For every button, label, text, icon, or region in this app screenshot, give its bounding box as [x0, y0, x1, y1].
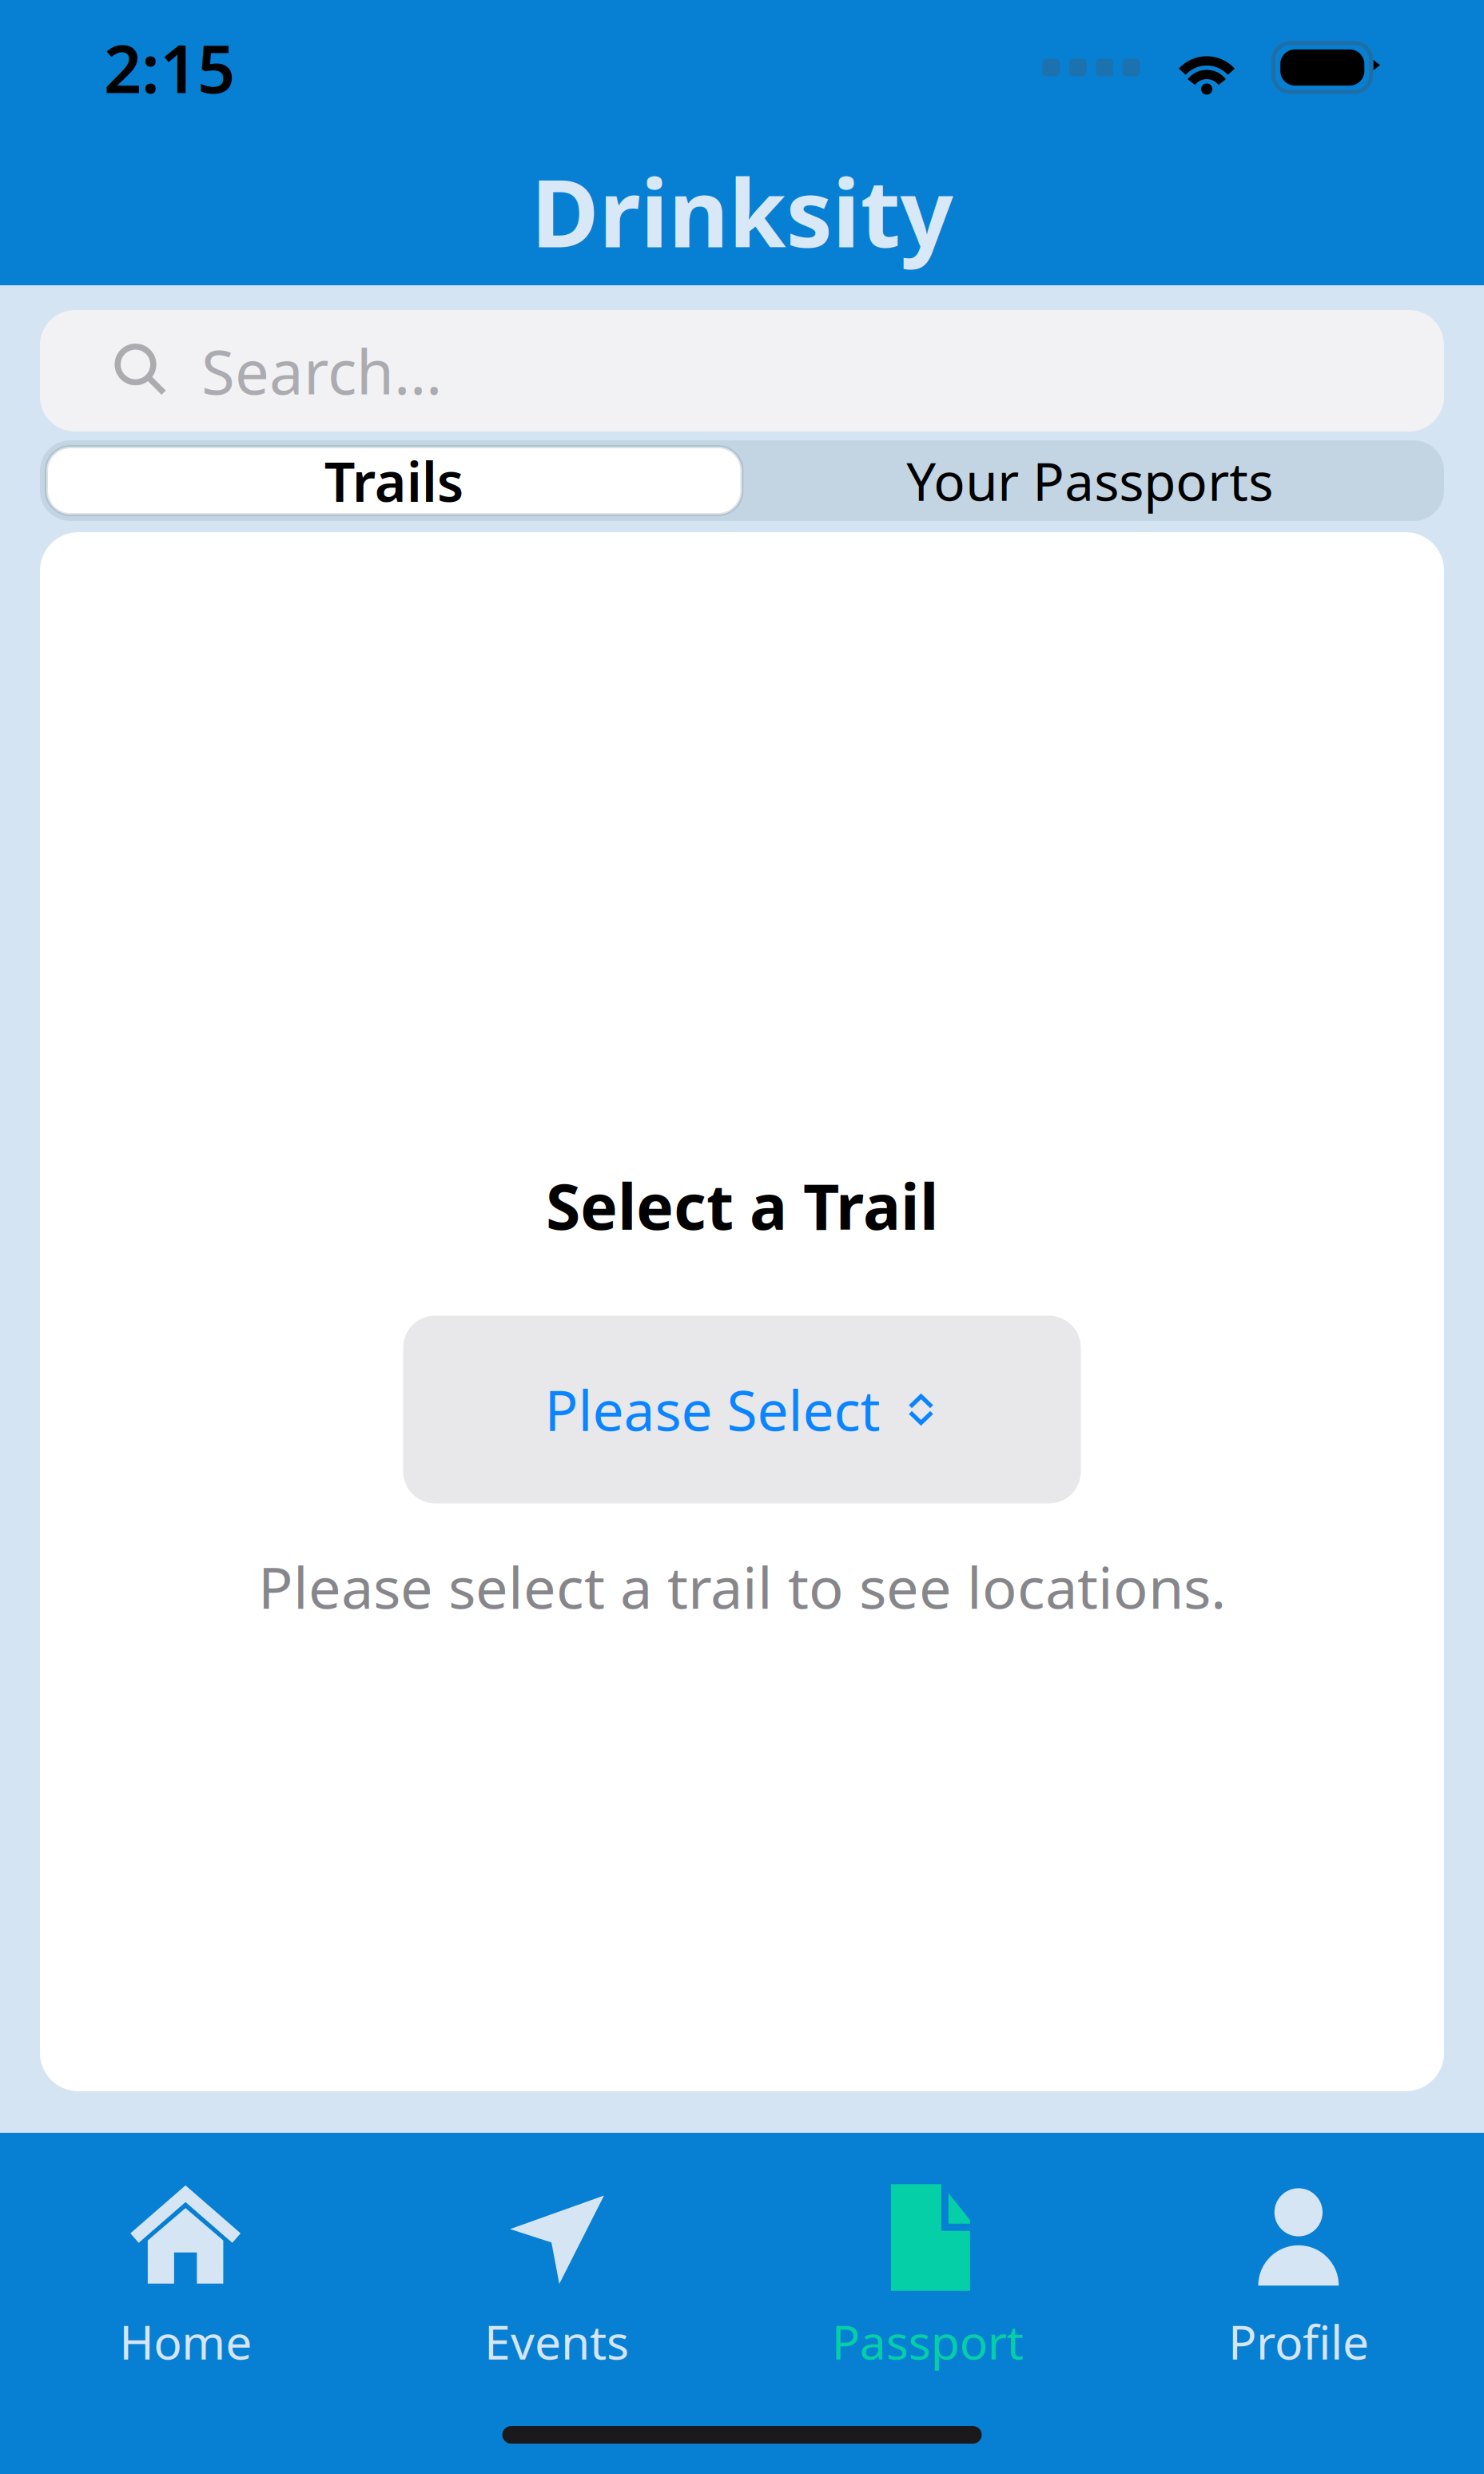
button[interactable]: Profile: [1113, 2178, 1484, 2372]
button[interactable]: Events: [371, 2178, 742, 2372]
button[interactable]: Please Select: [403, 1316, 1081, 1503]
staticText: Home: [119, 2310, 252, 2372]
staticText: Your Passports: [906, 446, 1273, 515]
staticText: Events: [484, 2310, 629, 2372]
staticText: Drinksity: [531, 150, 953, 273]
button[interactable]: Your Passports: [742, 447, 1438, 515]
staticText: Profile: [1228, 2310, 1369, 2372]
staticText: Passport: [832, 2310, 1023, 2372]
button[interactable]: Search: [40, 310, 1444, 432]
button[interactable]: Trails: [46, 447, 742, 515]
staticText: Select a Trail: [546, 1163, 938, 1247]
staticText: Search...: [201, 330, 442, 411]
staticText: Please Select: [545, 1373, 880, 1446]
button[interactable]: Passport: [742, 2178, 1113, 2372]
staticText: Please select a trail to see locations.: [258, 1548, 1226, 1625]
staticText: 2:15: [104, 24, 235, 111]
staticText: Trails: [324, 445, 464, 517]
button[interactable]: Home: [0, 2178, 371, 2372]
